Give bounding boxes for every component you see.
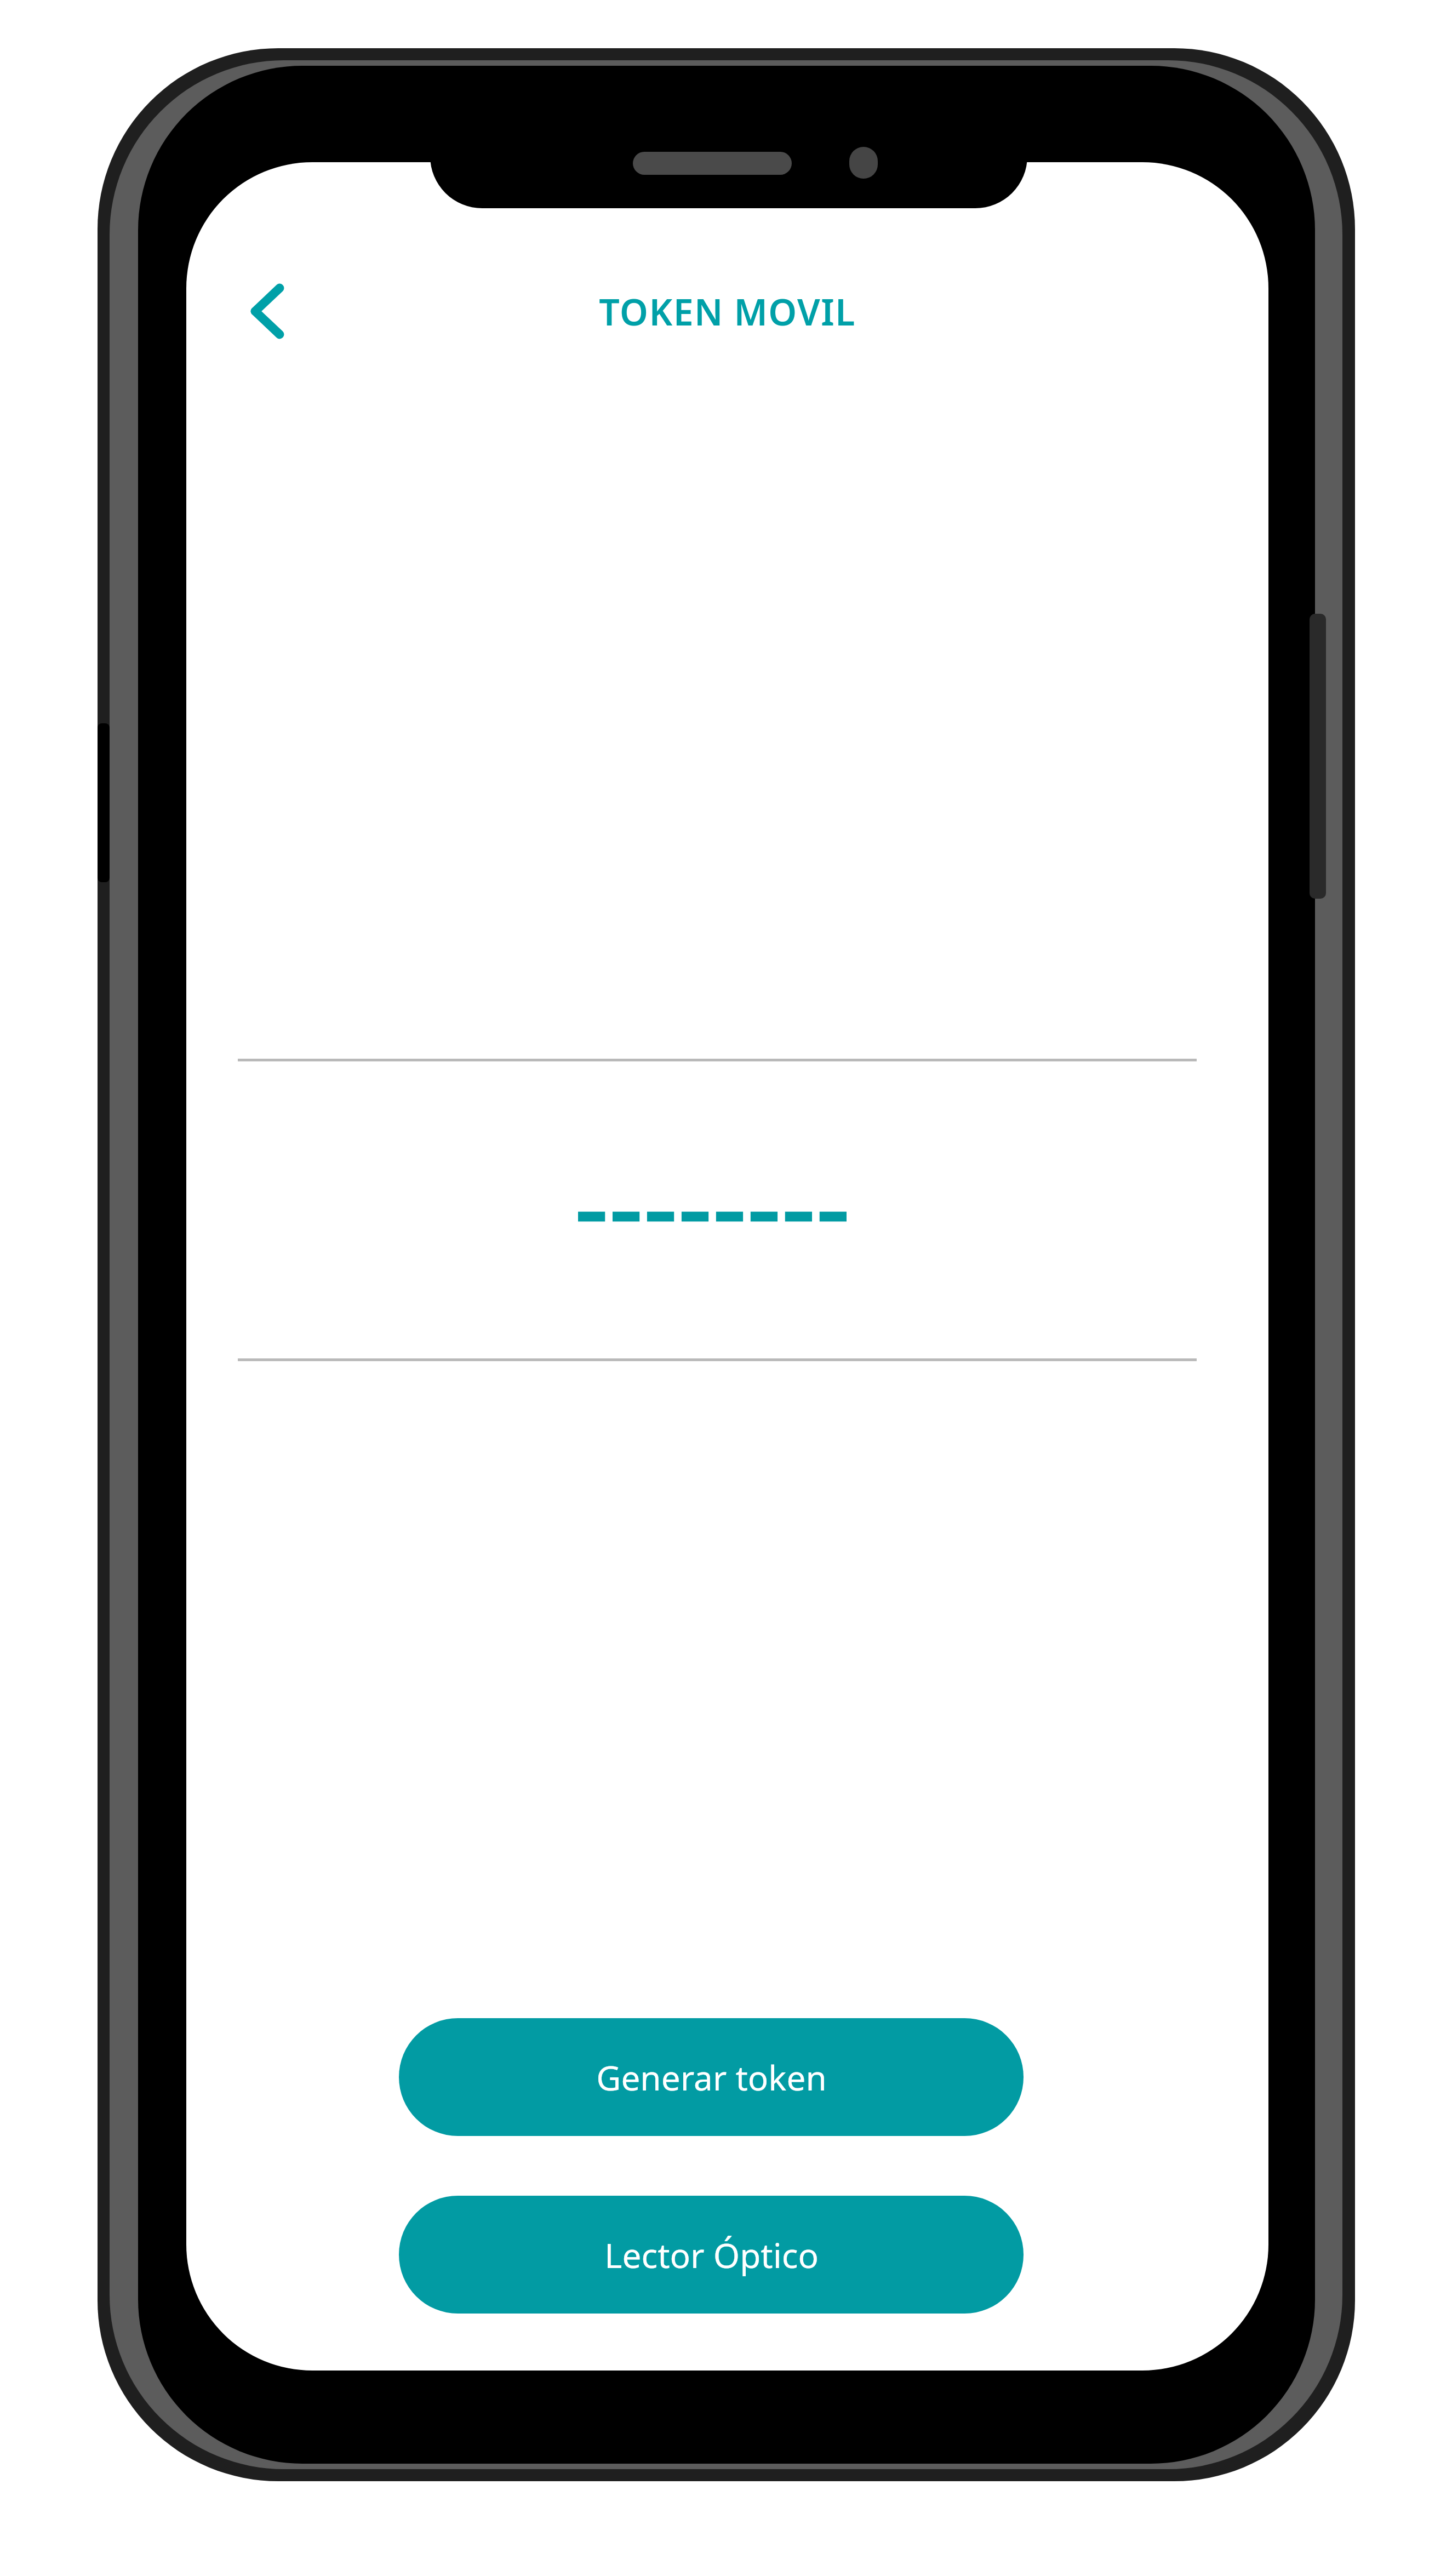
button[interactable]: Back xyxy=(224,267,311,355)
staticText: Generar token xyxy=(596,2054,827,2100)
button[interactable]: Generar token xyxy=(399,2018,1024,2136)
staticText: Lector Óptico xyxy=(604,2232,819,2278)
staticText: TOKEN MOVIL xyxy=(599,287,856,336)
button[interactable]: Lector Óptico xyxy=(399,2196,1024,2314)
